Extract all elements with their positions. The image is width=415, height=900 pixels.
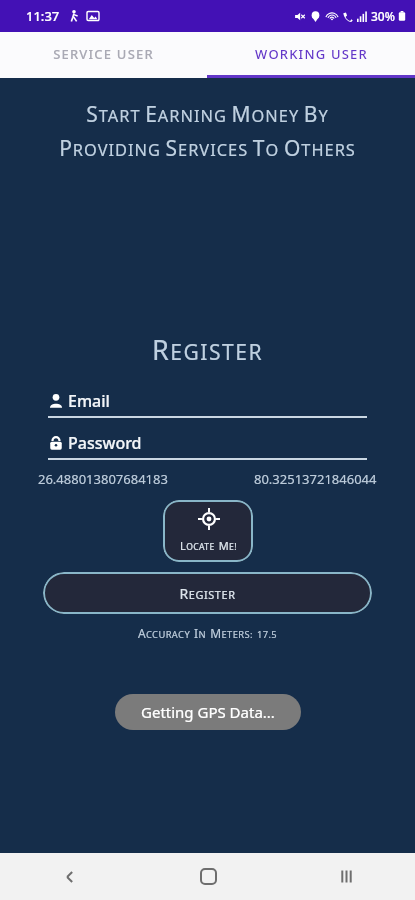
staticText: 80.32513721846044 — [254, 470, 377, 488]
staticText: REGISTER — [0, 331, 415, 368]
staticText: ACCURACY IN METERS: 17.5 — [0, 623, 415, 642]
staticText: 26.488013807684183 — [38, 470, 168, 488]
staticText: Email — [68, 390, 110, 412]
staticText: WORKING USER — [255, 45, 368, 63]
staticText: Password — [68, 432, 142, 454]
button[interactable]: REGISTER — [43, 572, 372, 614]
button[interactable]: Home — [139, 853, 277, 900]
button[interactable]: SERVICE USER — [0, 32, 207, 75]
staticText: START EARNING MONEY BY — [0, 100, 415, 129]
staticText: REGISTER — [179, 584, 236, 603]
button[interactable]: WORKING USER — [207, 32, 415, 75]
button[interactable]: Recent apps — [277, 853, 415, 900]
staticText: PROVIDING SERVICES TO OTHERS — [0, 134, 415, 163]
staticText: LOCATE ME! — [180, 535, 237, 554]
button[interactable]: Back — [0, 853, 139, 900]
staticText: 30% — [371, 8, 395, 24]
staticText: Getting GPS Data... — [141, 702, 275, 722]
button[interactable]: LOCATE ME! — [163, 500, 253, 562]
staticText: SERVICE USER — [53, 45, 154, 63]
staticText: 11:37 — [26, 7, 60, 25]
